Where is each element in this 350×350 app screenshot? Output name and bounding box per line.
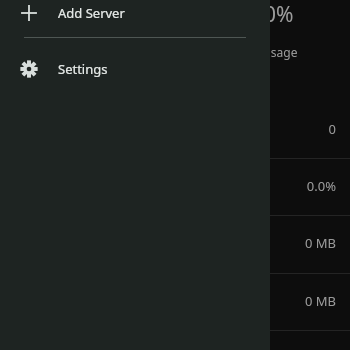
button[interactable]: 0.0% [0,172,350,200]
button[interactable]: 0 [0,115,350,143]
staticText: Add Server [58,4,125,22]
button[interactable]: 0 MB [0,287,350,315]
staticText: 0.0% [306,177,336,195]
button[interactable]: 0 MB [0,229,350,257]
staticText: 0 MB [304,234,336,252]
staticText: Settings [58,60,108,78]
staticText: 0% [264,0,294,29]
staticText: 0 MB [304,292,336,310]
button[interactable]: Add Server [0,0,270,26]
staticText: Usage [262,44,298,60]
staticText: 0 [328,120,336,138]
button[interactable]: Settings [0,48,270,90]
